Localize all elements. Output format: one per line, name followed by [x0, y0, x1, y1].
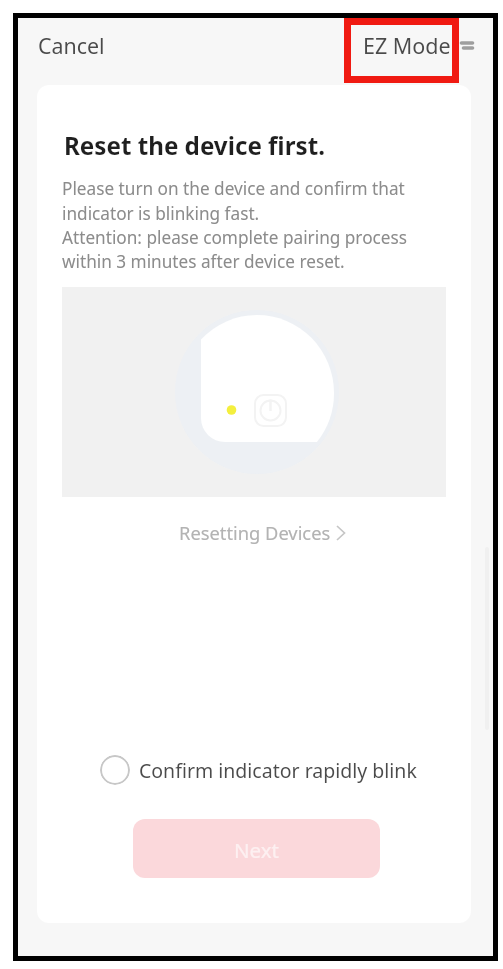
- button[interactable]: EZ Mode: [359, 25, 455, 66]
- staticText: Confirm indicator rapidly blink: [139, 757, 417, 784]
- button[interactable]: More options: [452, 32, 484, 64]
- button[interactable]: Cancel: [34, 25, 109, 66]
- staticText: EZ Mode: [363, 31, 451, 60]
- staticText: Reset the device first.: [64, 129, 325, 162]
- button[interactable]: Next: [133, 819, 380, 878]
- button[interactable]: Resetting Devices: [173, 515, 352, 550]
- staticText: Please turn on the device and confirm th…: [62, 177, 407, 273]
- button[interactable]: Confirm indicator rapidly blink: [96, 749, 421, 791]
- staticText: Cancel: [38, 31, 105, 60]
- staticText: Next: [234, 836, 279, 864]
- staticText: Resetting Devices: [179, 520, 331, 545]
